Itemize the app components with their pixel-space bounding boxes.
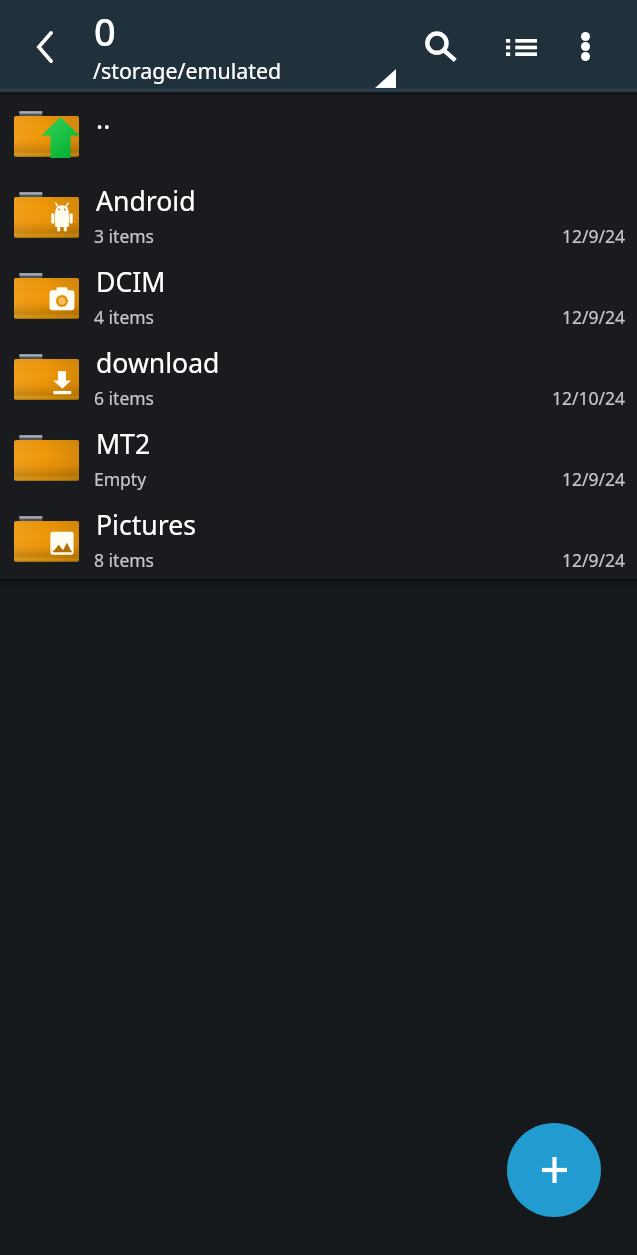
staticText: 12/9/24: [562, 548, 626, 572]
staticText: Empty: [94, 467, 147, 491]
staticText: 12/10/24: [552, 386, 626, 410]
staticText: 6 items: [94, 386, 155, 410]
button[interactable]: View mode: [488, 0, 554, 93]
button[interactable]: Search: [408, 0, 474, 93]
staticText: 4 items: [94, 305, 155, 329]
button[interactable]: Back: [0, 0, 90, 93]
button[interactable]: DCIM: [0, 255, 637, 336]
button[interactable]: More options: [556, 0, 615, 93]
staticText: MT2: [96, 426, 151, 462]
button[interactable]: Android: [0, 174, 637, 255]
staticText: 3 items: [94, 224, 155, 248]
button[interactable]: download: [0, 336, 637, 417]
staticText: Pictures: [96, 507, 196, 543]
staticText: Android: [96, 183, 196, 219]
button[interactable]: Add: [507, 1123, 601, 1217]
staticText: /storage/emulated: [93, 56, 282, 85]
staticText: download: [96, 345, 220, 381]
staticText: 8 items: [94, 548, 155, 572]
staticText: 0: [94, 5, 116, 57]
staticText: 12/9/24: [562, 224, 626, 248]
staticText: DCIM: [96, 264, 166, 300]
staticText: 12/9/24: [562, 467, 626, 491]
staticText: ..: [96, 101, 111, 137]
button[interactable]: MT2: [0, 417, 637, 498]
button[interactable]: Pictures: [0, 498, 637, 579]
button[interactable]: ..: [0, 93, 637, 174]
staticText: 12/9/24: [562, 305, 626, 329]
